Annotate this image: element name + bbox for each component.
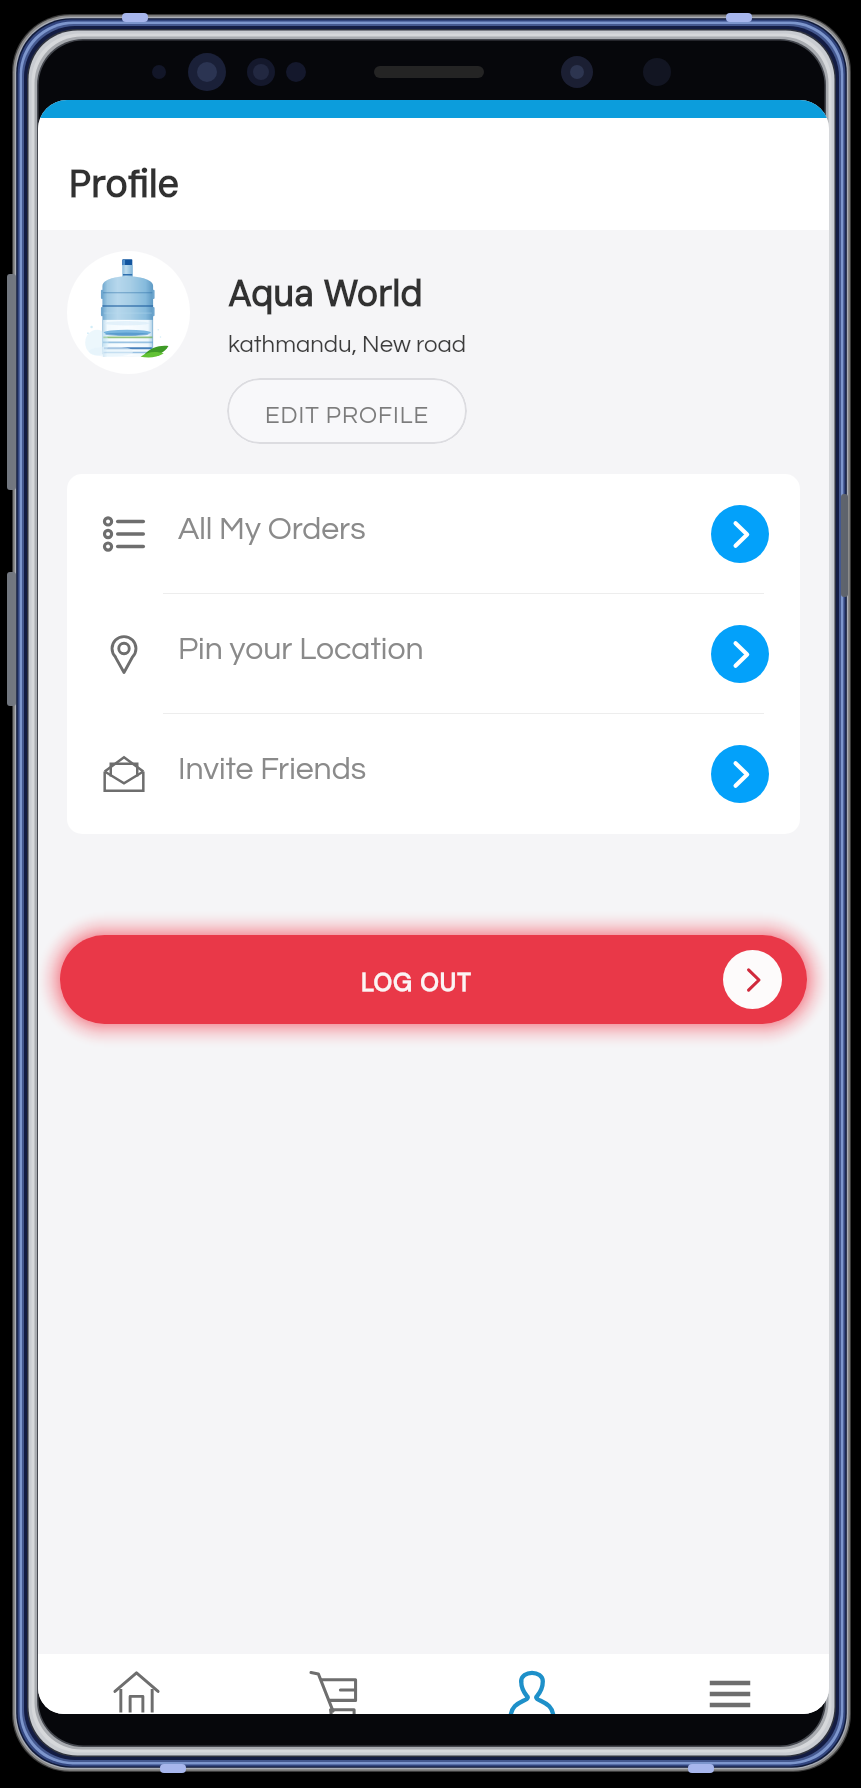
staticText: Invite Friends (178, 753, 716, 786)
staticText: Aqua World (228, 270, 423, 317)
button[interactable]: Home (38, 1654, 235, 1714)
staticText: kathmandu, New road (228, 332, 467, 357)
staticText: EDIT PROFILE (265, 403, 430, 428)
button[interactable]: Pin your Location (67, 594, 800, 714)
staticText: Pin your Location (178, 633, 716, 666)
button[interactable]: All My Orders (67, 474, 800, 594)
button[interactable]: Open Invite Friends (711, 745, 769, 803)
button[interactable]: Invite Friends (67, 714, 800, 834)
button[interactable]: Cart (235, 1654, 433, 1714)
button[interactable]: Menu (631, 1654, 829, 1714)
staticText: LOG OUT (361, 966, 472, 999)
button[interactable]: Open All My Orders (711, 505, 769, 563)
staticText: All My Orders (178, 513, 716, 546)
button[interactable]: Profile (433, 1654, 631, 1714)
button[interactable]: EDIT PROFILE (227, 378, 467, 444)
button[interactable]: Open Pin your Location (711, 625, 769, 683)
staticText: Profile (69, 159, 180, 208)
button[interactable]: LOG OUT (60, 935, 807, 1024)
